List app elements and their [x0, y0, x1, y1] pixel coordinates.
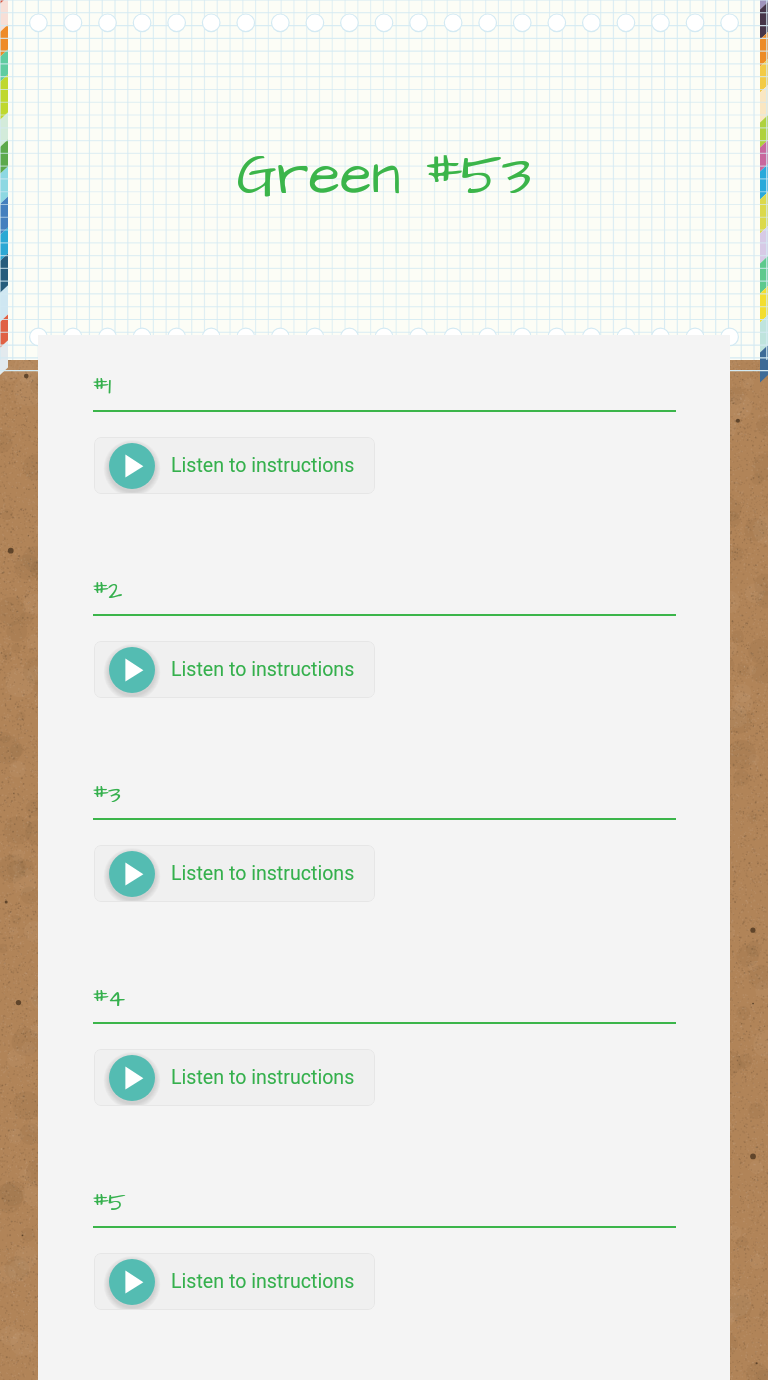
- staticText: #2: [92, 573, 123, 608]
- staticText: Green #53: [0, 136, 768, 217]
- button[interactable]: Listen to instructions: [94, 1049, 375, 1106]
- staticText: Listen to instructions: [171, 454, 355, 477]
- button[interactable]: Listen to instructions: [94, 437, 375, 494]
- staticText: Listen to instructions: [171, 862, 355, 885]
- staticText: Listen to instructions: [171, 1066, 355, 1089]
- button[interactable]: Listen to instructions: [94, 1253, 375, 1310]
- staticText: #3: [92, 777, 121, 812]
- staticText: #5: [92, 1185, 126, 1220]
- button[interactable]: Listen to instructions: [94, 845, 375, 902]
- button[interactable]: Listen to instructions: [94, 641, 375, 698]
- staticText: #1: [92, 369, 112, 404]
- staticText: #4: [92, 981, 125, 1016]
- staticText: Listen to instructions: [171, 1270, 355, 1293]
- staticText: Listen to instructions: [171, 658, 355, 681]
